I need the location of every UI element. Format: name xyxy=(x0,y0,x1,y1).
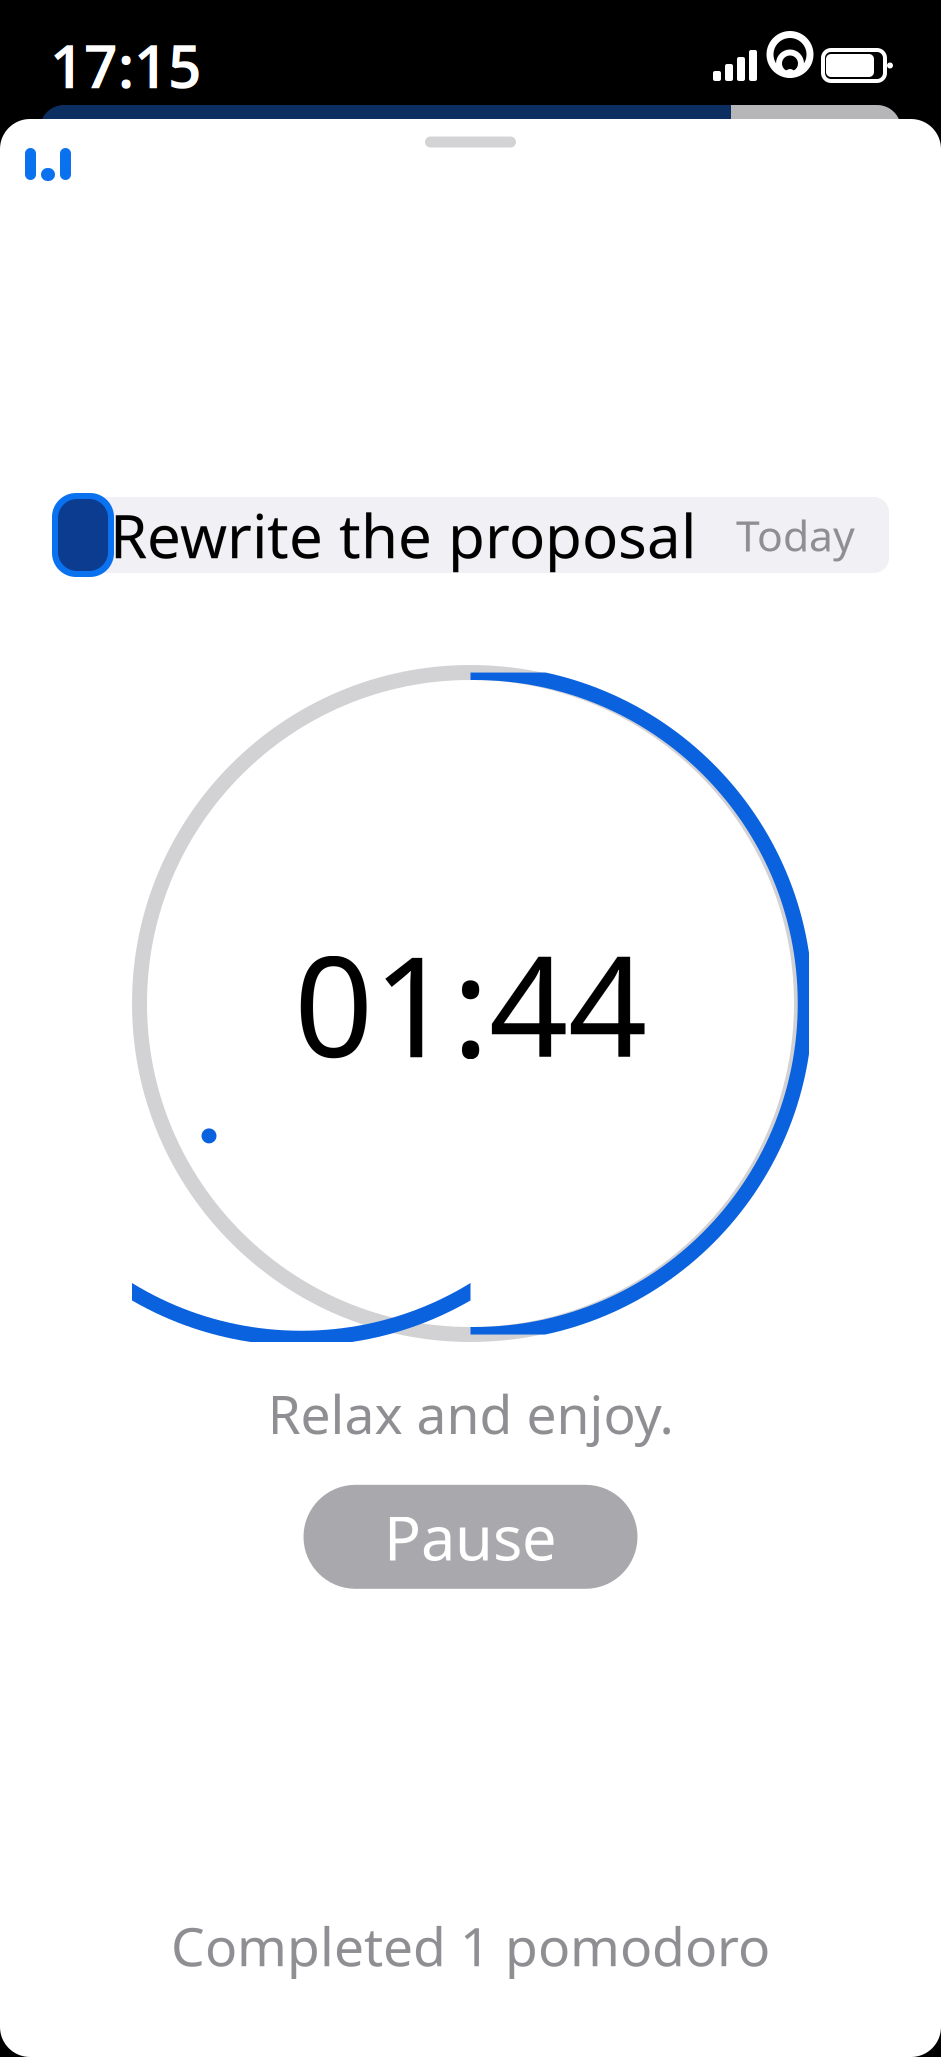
staticText: Rewrite the proposal xyxy=(110,495,696,575)
button[interactable]: Collapse xyxy=(0,119,96,215)
button[interactable]: Rewrite the proposal xyxy=(0,487,941,583)
staticText: Completed 1 pomodoro xyxy=(171,1910,770,1981)
staticText: Today xyxy=(736,507,855,563)
staticText: Pause xyxy=(384,1496,557,1577)
staticText: 01:44 xyxy=(294,911,647,1095)
staticText: 17:15 xyxy=(50,26,202,104)
staticText: Relax and enjoy. xyxy=(267,1378,673,1449)
button[interactable]: Pause xyxy=(303,1485,637,1589)
